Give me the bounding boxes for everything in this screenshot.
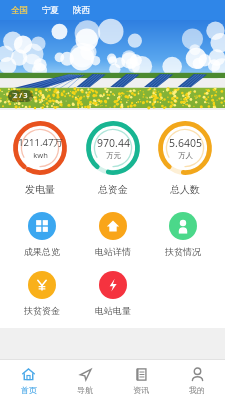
button[interactable]: 我的 xyxy=(169,360,225,400)
staticText: 资讯 xyxy=(133,385,149,395)
staticText: 宁夏 xyxy=(42,5,59,16)
button[interactable]: 资讯 xyxy=(113,360,169,400)
button[interactable]: 电站详情 xyxy=(84,212,142,257)
staticText: 1211.47万 xyxy=(18,136,63,149)
button[interactable]: 导航 xyxy=(57,360,113,400)
staticText: 发电量 xyxy=(25,183,55,196)
staticText: 成果总览 xyxy=(24,246,60,257)
staticText: 万人 xyxy=(178,151,193,160)
staticText: 总人数 xyxy=(170,183,200,196)
staticText: 扶贫资金 xyxy=(24,305,60,316)
staticText: 万元 xyxy=(106,151,121,160)
staticText: 总资金 xyxy=(98,183,128,196)
button[interactable]: 1211.47万 xyxy=(7,120,73,196)
button[interactable]: 首页 xyxy=(0,360,57,400)
button[interactable]: 扶贫情况 xyxy=(154,212,212,257)
button[interactable]: 扶贫资金 xyxy=(13,271,71,316)
staticText: 电站电量 xyxy=(95,305,131,316)
button[interactable]: Banner image xyxy=(0,20,225,108)
staticText: 陕西 xyxy=(73,5,90,16)
staticText: 5.6405 xyxy=(169,136,202,150)
staticText: 导航 xyxy=(77,385,93,395)
staticText: 全国 xyxy=(11,5,28,16)
staticText: 我的 xyxy=(189,385,205,395)
button[interactable]: 成果总览 xyxy=(13,212,71,257)
staticText: 扶贫情况 xyxy=(165,246,201,257)
staticText: kwh xyxy=(33,150,48,160)
button[interactable]: 全国 xyxy=(10,4,29,17)
button[interactable]: 陕西 xyxy=(72,4,91,17)
staticText: 2 / 3 xyxy=(13,91,28,101)
staticText: 970.44 xyxy=(97,136,130,150)
staticText: 首页 xyxy=(21,385,37,395)
button[interactable]: 5.6405 xyxy=(152,120,218,196)
button[interactable]: 宁夏 xyxy=(41,4,60,17)
staticText: 电站详情 xyxy=(95,246,131,257)
button[interactable]: 970.44 xyxy=(80,120,146,196)
button[interactable]: 电站电量 xyxy=(84,271,142,316)
